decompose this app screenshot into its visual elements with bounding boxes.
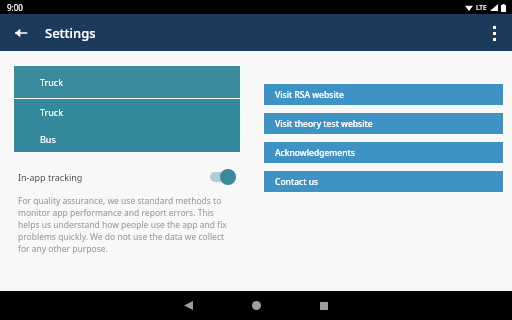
staticText: Bus — [40, 133, 56, 145]
staticText: Acknowledgements — [275, 147, 355, 159]
button[interactable]: Recent apps — [304, 291, 344, 320]
staticText: Visit theory test website — [275, 118, 373, 130]
staticText: For quality assurance, we use standard m… — [18, 195, 236, 255]
button[interactable]: In-app tracking — [0, 165, 252, 189]
button[interactable]: Home — [236, 291, 276, 320]
button[interactable]: Visit theory test website — [264, 113, 503, 134]
staticText: 9:00 — [7, 2, 23, 13]
staticText: LTE — [476, 3, 487, 12]
staticText: Truck — [40, 106, 63, 118]
button[interactable]: Bus — [14, 125, 240, 152]
staticText: Truck — [40, 76, 63, 88]
staticText: Contact us — [275, 176, 319, 188]
button[interactable]: In-app tracking toggle — [210, 169, 236, 185]
button[interactable]: More options — [481, 20, 507, 46]
button[interactable]: Acknowledgements — [264, 142, 503, 163]
button[interactable]: Contact us — [264, 171, 503, 192]
button[interactable]: Visit RSA website — [264, 84, 503, 105]
staticText: Visit RSA website — [275, 89, 344, 101]
staticText: In-app tracking — [18, 171, 83, 183]
button[interactable]: Truck — [14, 99, 240, 125]
button[interactable]: Truck — [14, 66, 240, 98]
button[interactable]: Back — [8, 20, 34, 46]
staticText: Settings — [45, 24, 96, 42]
button[interactable]: Back — [168, 291, 208, 320]
